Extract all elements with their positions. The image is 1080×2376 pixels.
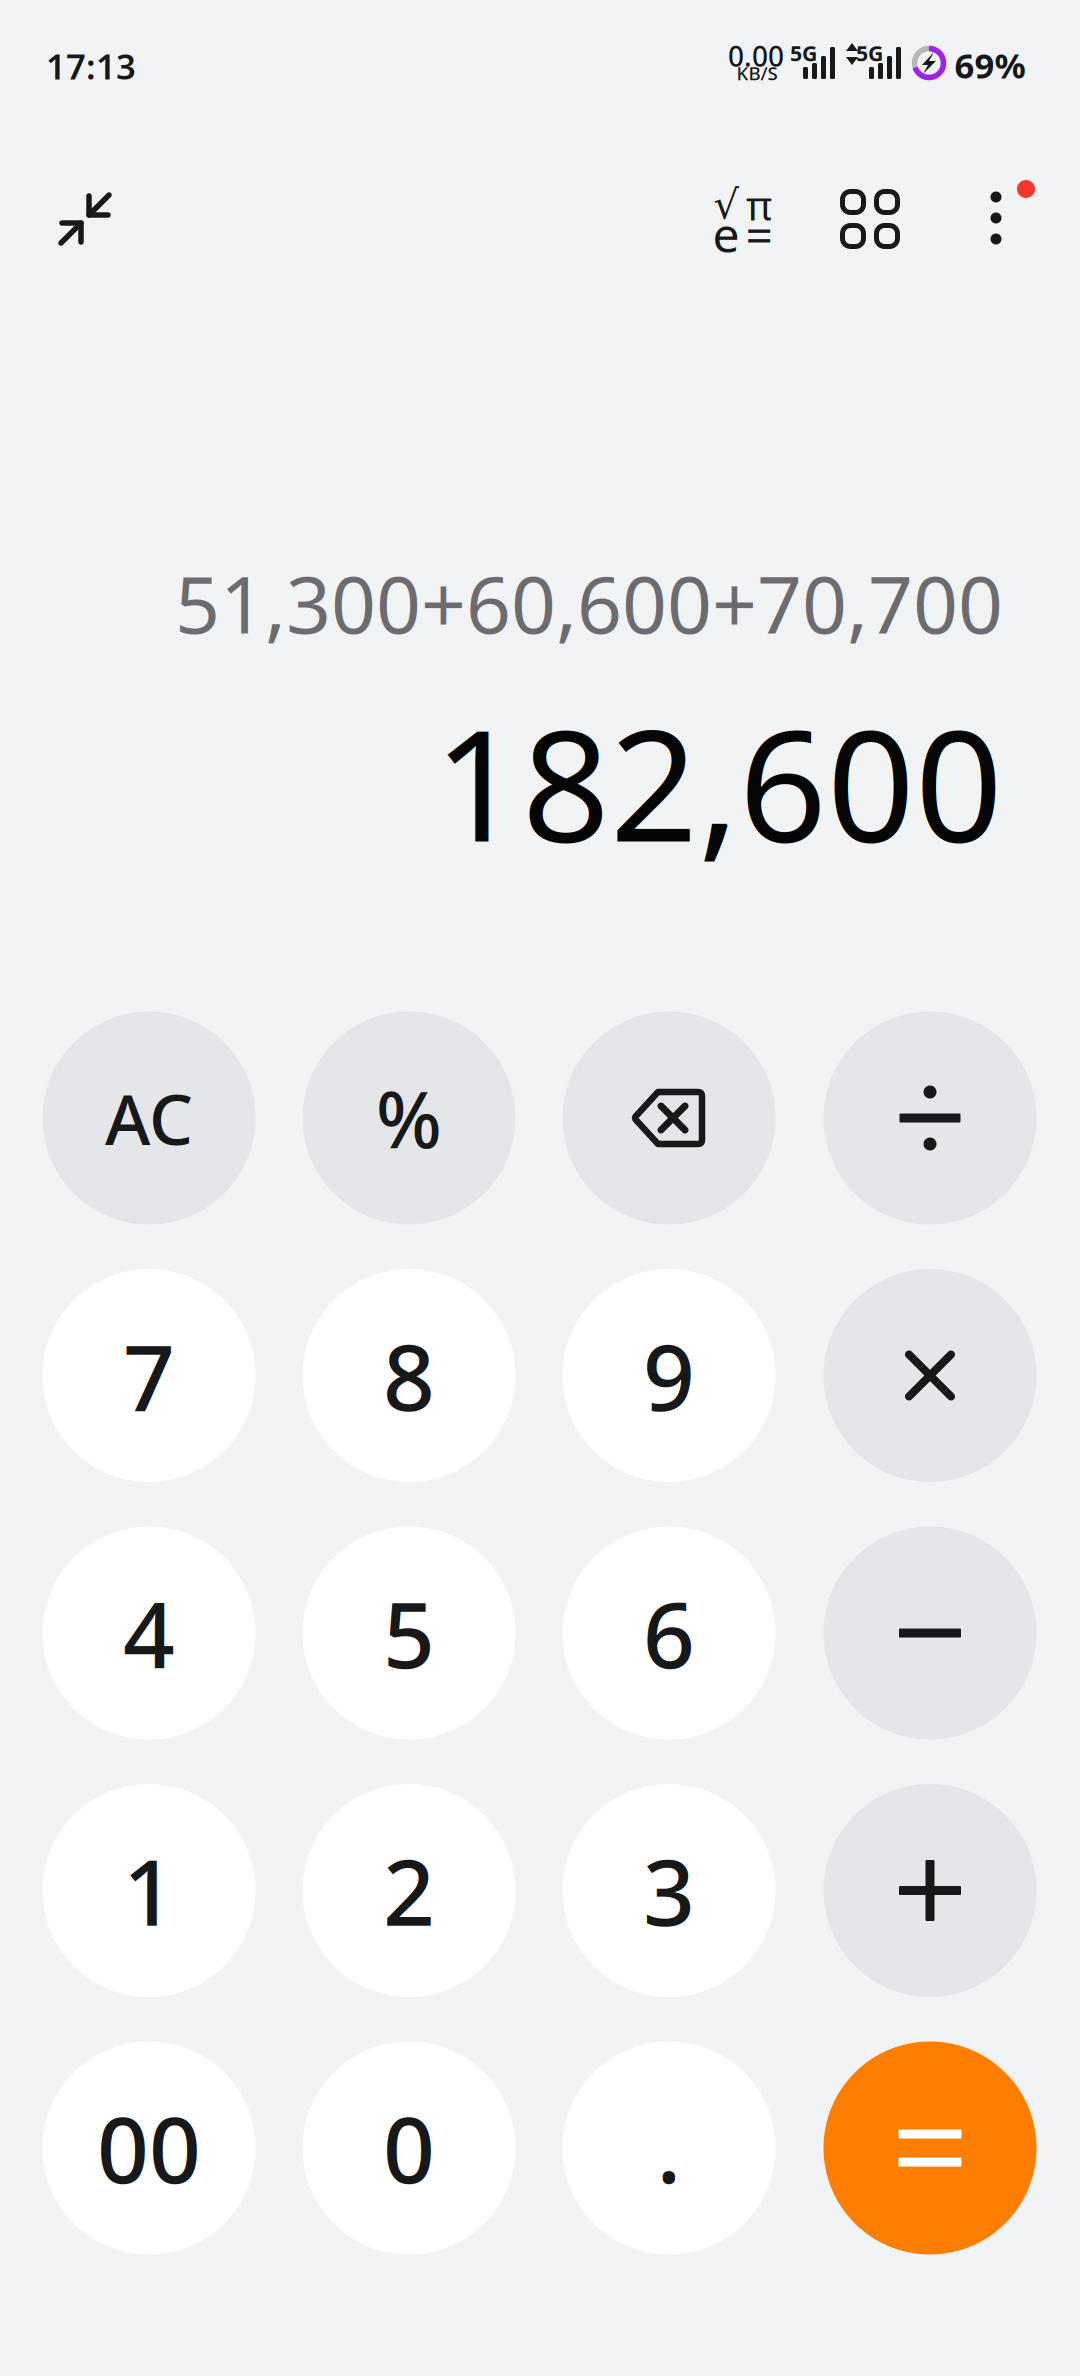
button[interactable]: Minus [823,1526,1036,1739]
button[interactable]: Plus [823,1784,1036,1997]
button[interactable]: Backspace [562,1011,775,1224]
staticText: 5G [790,39,817,67]
staticText: 2 [383,1830,435,1951]
staticText: = [745,202,772,266]
staticText: % [376,1067,442,1169]
staticText: 5 [383,1573,435,1693]
button[interactable]: 3 [562,1784,775,1997]
button[interactable]: 8 [302,1269,515,1482]
button[interactable]: Converters [814,163,926,275]
staticText: 17:13 [46,43,136,89]
button[interactable]: 2 [302,1784,515,1997]
button[interactable]: 1 [42,1784,255,1997]
staticText: 1 [123,1830,175,1951]
button[interactable]: Collapse [29,163,141,275]
button[interactable]: 7 [42,1269,255,1482]
button[interactable]: More options [940,162,1052,274]
staticText: 0 [383,2088,435,2208]
button[interactable]: AC [42,1011,255,1224]
staticText: 69% [954,42,1025,88]
button[interactable]: Scientific [688,164,800,276]
button[interactable]: 5 [302,1526,515,1739]
button[interactable]: Multiply [823,1269,1036,1482]
staticText: 00 [97,2088,201,2208]
button[interactable]: 00 [42,2041,255,2254]
staticText: 51,300+60,600+70,700 [175,551,1003,655]
staticText: π [746,178,772,231]
staticText: √ [713,182,738,228]
staticText: 0.00 [728,37,784,75]
staticText: 4 [123,1573,175,1693]
button[interactable]: . [562,2041,775,2254]
staticText: 5G [856,39,883,67]
button[interactable]: % [302,1011,515,1224]
staticText: 3 [643,1830,695,1951]
button[interactable]: 6 [562,1526,775,1739]
button[interactable]: 9 [562,1269,775,1482]
staticText: 6 [643,1573,695,1693]
button[interactable]: 0 [302,2041,515,2254]
staticText: 7 [123,1315,175,1436]
staticText: KB/S [736,61,777,85]
button[interactable]: 4 [42,1526,255,1739]
staticText: . [656,2088,681,2208]
staticText: e [712,202,739,266]
staticText: 8 [383,1315,435,1436]
staticText: 182,600 [434,680,1003,884]
staticText: AC [105,1072,193,1164]
staticText: 9 [643,1315,695,1436]
button[interactable]: Divide [823,1011,1036,1224]
button[interactable]: Equals [823,2041,1036,2254]
